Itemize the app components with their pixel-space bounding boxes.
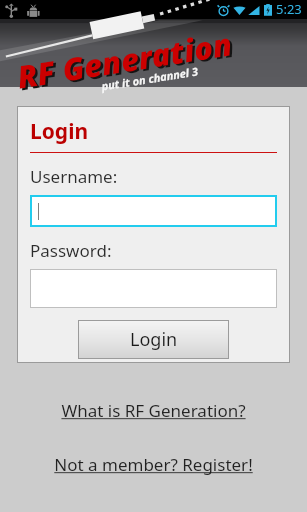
staticText: Not a member? Register!: [54, 453, 253, 476]
button[interactable]: Not a member? Register!: [48, 451, 259, 478]
staticText: Login: [130, 327, 178, 352]
button[interactable]: What is RF Generation?: [55, 397, 252, 424]
staticText: RF Generation: [14, 22, 235, 98]
staticText: Login: [30, 117, 89, 146]
staticText: 5:23: [276, 0, 302, 18]
staticText: Username:: [30, 165, 118, 188]
staticText: Password:: [30, 239, 112, 262]
button[interactable]: [30, 195, 277, 227]
staticText: What is RF Generation?: [61, 399, 246, 422]
staticText: RF Generation: [16, 24, 237, 99]
staticText: put it on channel 3: [100, 63, 199, 93]
button[interactable]: [30, 269, 277, 308]
button[interactable]: Login: [78, 320, 229, 359]
